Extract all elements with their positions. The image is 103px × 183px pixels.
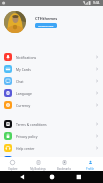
button[interactable]: My Cards bbox=[0, 63, 103, 75]
staticText: Notifications bbox=[16, 55, 37, 60]
button[interactable]: Chat bbox=[0, 75, 103, 87]
staticText: Bookmarks bbox=[57, 167, 71, 171]
staticText: My Bookings bbox=[30, 167, 46, 171]
staticText: Explore bbox=[8, 167, 18, 171]
button[interactable]: Explore bbox=[0, 157, 25, 171]
button[interactable]: Profile bbox=[77, 157, 103, 171]
button[interactable]: Bookmarks bbox=[51, 157, 77, 171]
staticText: Chat bbox=[16, 79, 24, 84]
button[interactable]: Help center bbox=[0, 142, 103, 154]
button[interactable]: My Bookings bbox=[25, 157, 51, 171]
staticText: Terms & conditions bbox=[16, 122, 47, 127]
staticText: Help center bbox=[16, 146, 35, 151]
staticText: Privacy policy bbox=[16, 134, 38, 139]
button[interactable]: Privacy policy bbox=[0, 130, 103, 142]
staticText: Currency bbox=[16, 103, 31, 108]
button[interactable]: Currency bbox=[0, 99, 103, 111]
button[interactable]: Notifications bbox=[0, 51, 103, 63]
staticText: Profile bbox=[86, 167, 94, 171]
button[interactable]: Terms & conditions bbox=[0, 118, 103, 130]
staticText: Language bbox=[16, 91, 32, 96]
staticText: CTHthemes bbox=[35, 16, 58, 21]
button[interactable]: About us bbox=[0, 154, 103, 166]
button[interactable]: Language bbox=[0, 87, 103, 99]
staticText: Administrator bbox=[38, 24, 54, 27]
staticText: 9:34 bbox=[93, 1, 100, 5]
staticText: My Cards bbox=[16, 67, 31, 72]
